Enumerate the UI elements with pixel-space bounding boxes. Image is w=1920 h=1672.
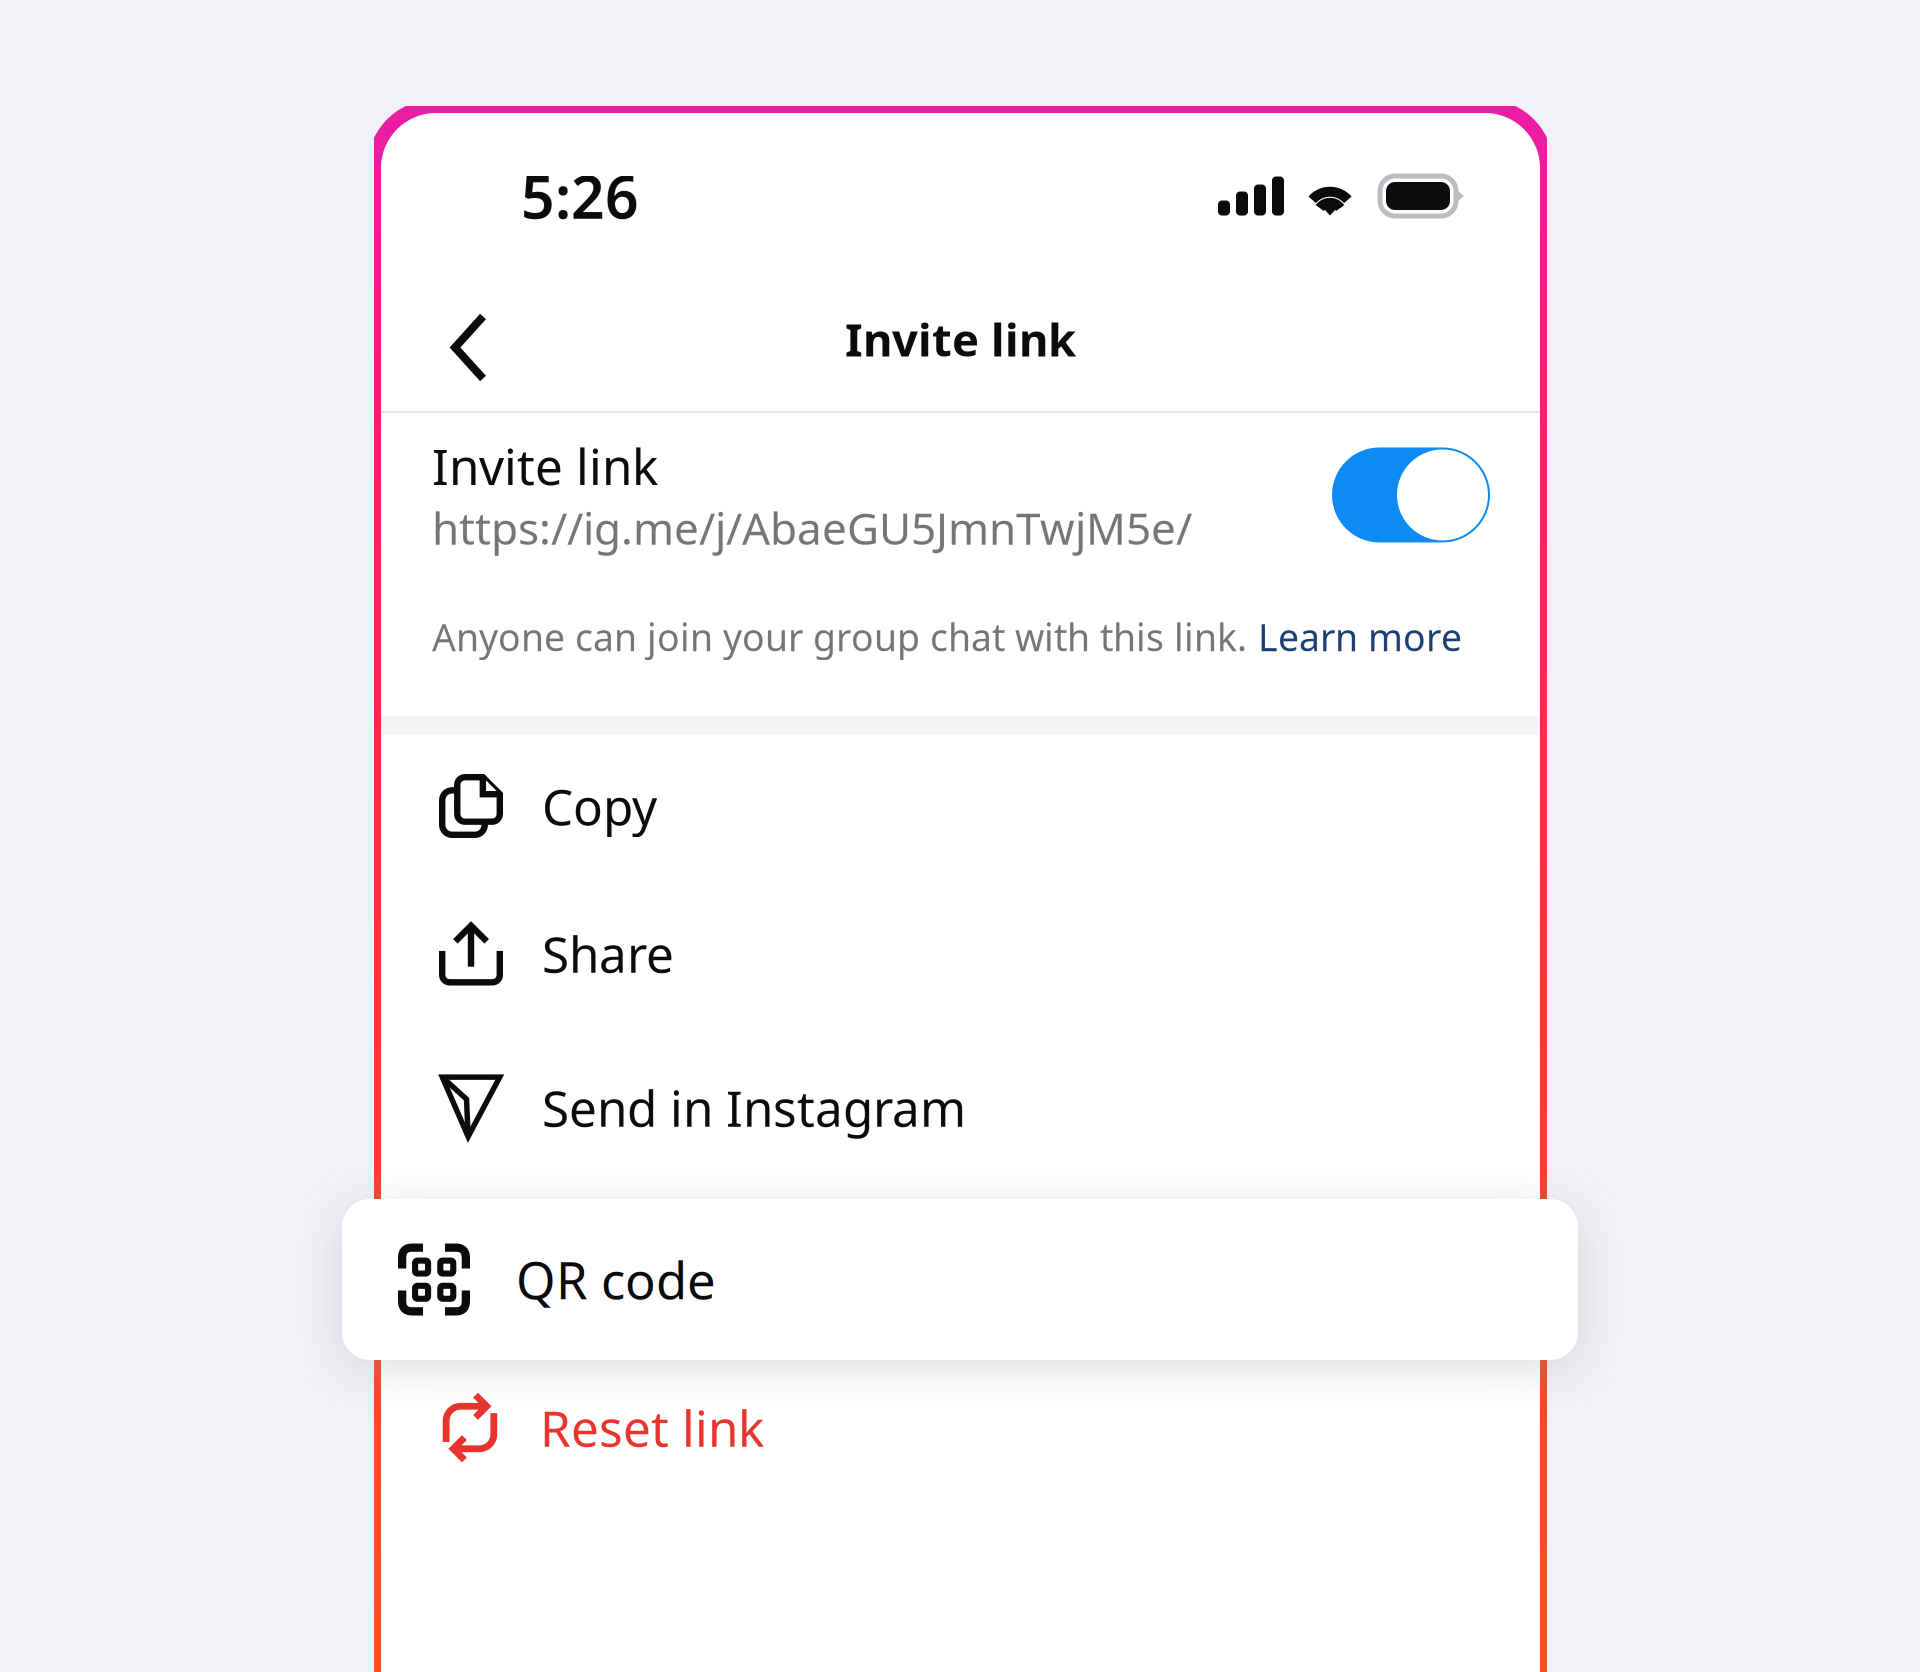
button[interactable]: Send in Instagram <box>381 1030 1540 1184</box>
staticText: QR code <box>516 1246 716 1313</box>
staticText: Send in Instagram <box>542 1075 966 1140</box>
button[interactable]: Back <box>425 281 517 408</box>
button[interactable]: QR code <box>342 1199 1578 1360</box>
staticText: Anyone can join your group chat with thi… <box>432 612 1247 661</box>
button[interactable]: QR code <box>381 1184 1540 1350</box>
staticText: 5:26 <box>521 157 639 235</box>
staticText: Invite link <box>845 309 1076 369</box>
staticText: QR code <box>542 1235 737 1300</box>
button[interactable]: Copy <box>381 735 1540 876</box>
staticText: Learn more <box>1258 612 1462 661</box>
staticText: Copy <box>542 773 657 839</box>
staticText: Invite link <box>432 433 658 498</box>
staticText: https://ig.me/j/AbaeGU5JmnTwjM5e/ <box>432 498 1192 557</box>
button[interactable]: Share <box>381 876 1540 1030</box>
staticText: Reset link <box>540 1395 764 1460</box>
staticText: Share <box>542 921 674 986</box>
button[interactable]: Invite link <box>381 413 1540 716</box>
button[interactable]: Reset link <box>381 1350 1540 1504</box>
